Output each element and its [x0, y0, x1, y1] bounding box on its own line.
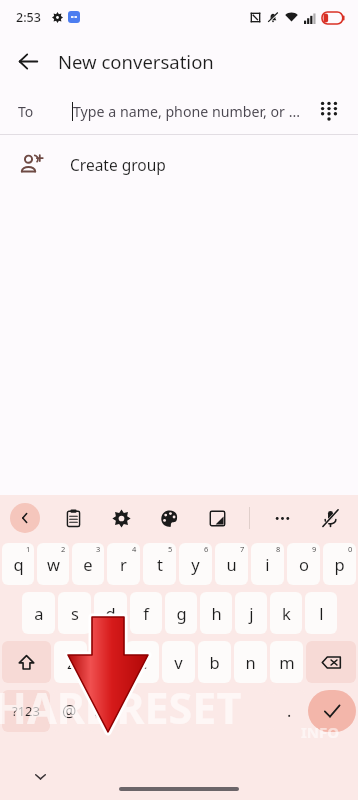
staticText: 5 [168, 544, 173, 554]
button[interactable]: q [2, 543, 34, 585]
button[interactable]: x [90, 641, 123, 683]
staticText: Create group [70, 154, 166, 175]
button[interactable]: Enter [308, 690, 356, 732]
button[interactable]: v [162, 641, 195, 683]
staticText: y [191, 553, 200, 575]
button[interactable]: Create group [0, 135, 358, 193]
button[interactable]: g [165, 592, 197, 634]
staticText: h [211, 602, 222, 624]
button[interactable]: h [200, 592, 232, 634]
staticText: 3 [96, 544, 101, 554]
button[interactable]: c [126, 641, 159, 683]
button[interactable]: o [287, 543, 320, 585]
staticText: a [34, 602, 44, 624]
button[interactable]: a [22, 592, 55, 634]
button[interactable]: k [270, 592, 302, 634]
staticText: Type a name, phone number, or ... [73, 102, 301, 121]
button[interactable]: More options [266, 502, 298, 534]
staticText: w [47, 553, 60, 575]
button[interactable]: n [234, 641, 267, 683]
staticText: x [102, 651, 111, 673]
staticText: 1 [26, 544, 31, 554]
button[interactable]: @ [53, 690, 85, 732]
button[interactable]: y [179, 543, 212, 585]
staticText: INFO [301, 722, 340, 742]
staticText: o [299, 553, 309, 575]
button[interactable]: Shift [2, 641, 51, 683]
staticText: p [334, 553, 345, 575]
staticText: g [176, 602, 187, 624]
staticText: ?123 [12, 702, 40, 720]
staticText: b [209, 651, 220, 673]
staticText: e [83, 553, 93, 575]
staticText: q [13, 553, 24, 575]
button[interactable]: e [72, 543, 104, 585]
button[interactable]: u [215, 543, 248, 585]
button[interactable]: Settings [105, 502, 137, 534]
button[interactable]: Back [10, 503, 40, 533]
button[interactable]: Backspace [306, 641, 356, 683]
staticText: m [279, 651, 295, 673]
staticText: t [157, 553, 163, 575]
button[interactable]: l [305, 592, 337, 634]
staticText: To [18, 102, 34, 121]
button[interactable]: r [107, 543, 140, 585]
button[interactable]: Back [8, 41, 48, 81]
button[interactable]: Space [123, 690, 270, 732]
staticText: r [120, 553, 127, 575]
staticText: 6 [204, 544, 209, 554]
button[interactable]: Dialpad [310, 92, 348, 130]
button[interactable]: t [143, 543, 176, 585]
staticText: @ [62, 700, 77, 722]
button[interactable]: Resize keyboard [201, 502, 233, 534]
staticText: u [226, 553, 237, 575]
staticText: c [139, 651, 147, 673]
button[interactable]: Themes [153, 502, 185, 534]
button[interactable]: f [130, 592, 162, 634]
staticText: New conversation [58, 49, 214, 74]
button[interactable]: p [323, 543, 356, 585]
staticText: 2:53 [16, 9, 41, 26]
button[interactable]: j [235, 592, 267, 634]
staticText: s [71, 602, 79, 624]
button[interactable]: Voice input off [314, 502, 346, 534]
staticText: n [245, 651, 256, 673]
staticText: 7 [240, 544, 245, 554]
button[interactable]: z [54, 641, 87, 683]
staticText: 9 [312, 544, 317, 554]
button[interactable]: d [94, 592, 127, 634]
button[interactable]: Clipboard [57, 502, 89, 534]
staticText: l [319, 602, 324, 624]
staticText: i [265, 553, 270, 575]
button[interactable]: s [58, 592, 91, 634]
button[interactable]: m [270, 641, 303, 683]
button[interactable]: i [251, 543, 284, 585]
button[interactable]: w [37, 543, 69, 585]
button[interactable]: . [273, 690, 305, 732]
staticText: j [249, 602, 254, 624]
staticText: 4 [132, 544, 137, 554]
staticText: 2 [61, 544, 66, 554]
staticText: d [105, 602, 116, 624]
staticText: f [143, 602, 149, 624]
staticText: 8 [276, 544, 281, 554]
staticText: z [67, 651, 75, 673]
staticText: 0 [348, 544, 353, 554]
button[interactable]: b [198, 641, 231, 683]
staticText: k [282, 602, 291, 624]
staticText: HARDRESET [0, 678, 242, 737]
button[interactable]: Change language [88, 690, 120, 732]
button[interactable]: ?123 [2, 690, 50, 732]
button[interactable]: Hide keyboard [24, 760, 56, 792]
staticText: . [287, 700, 292, 722]
staticText: v [174, 651, 183, 673]
